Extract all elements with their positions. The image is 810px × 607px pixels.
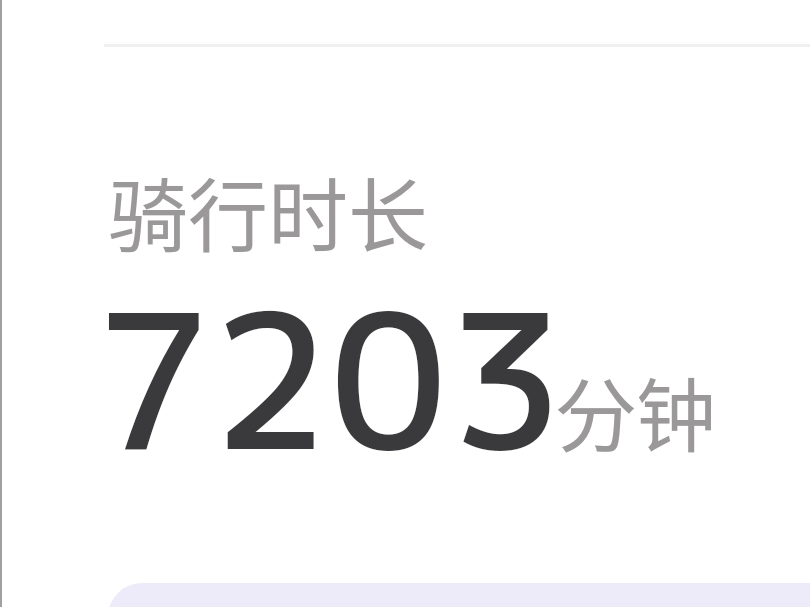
staticText: 7203 [94, 248, 566, 509]
staticText: 骑行时长 [108, 152, 428, 268]
staticText: 分钟 [556, 352, 716, 468]
button[interactable] [104, 120, 810, 540]
